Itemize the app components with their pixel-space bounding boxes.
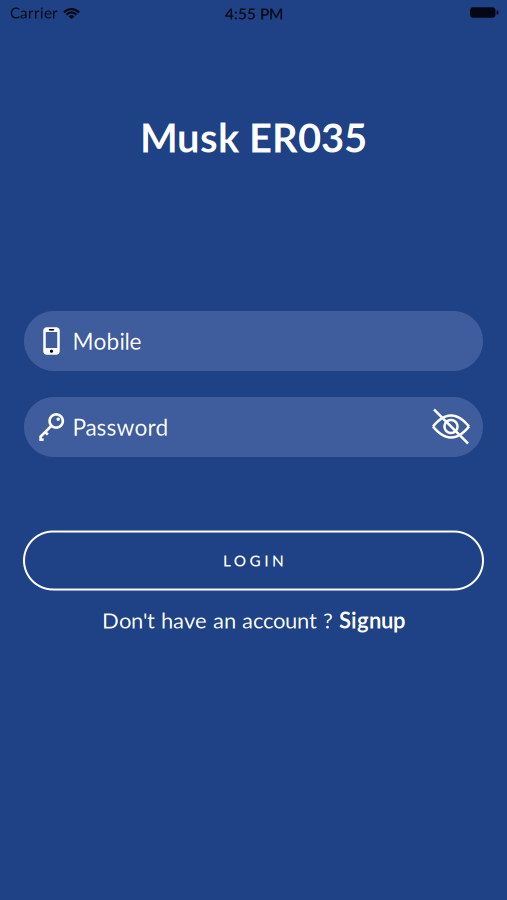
- staticText: Don't have an account ?: [102, 607, 339, 633]
- button[interactable]: Password: [24, 397, 483, 457]
- staticText: Mobile: [72, 327, 141, 355]
- button[interactable]: Show password: [431, 407, 471, 445]
- staticText: Signup: [339, 607, 405, 633]
- staticText: Password: [72, 413, 168, 441]
- button[interactable]: Mobile: [24, 311, 483, 371]
- staticText: Carrier: [10, 3, 58, 22]
- staticText: Musk ER035: [140, 113, 367, 161]
- button[interactable]: LOGIN: [24, 531, 483, 589]
- staticText: 4:55 PM: [225, 4, 283, 23]
- staticText: LOGIN: [223, 551, 284, 570]
- button[interactable]: Signup: [339, 607, 405, 633]
